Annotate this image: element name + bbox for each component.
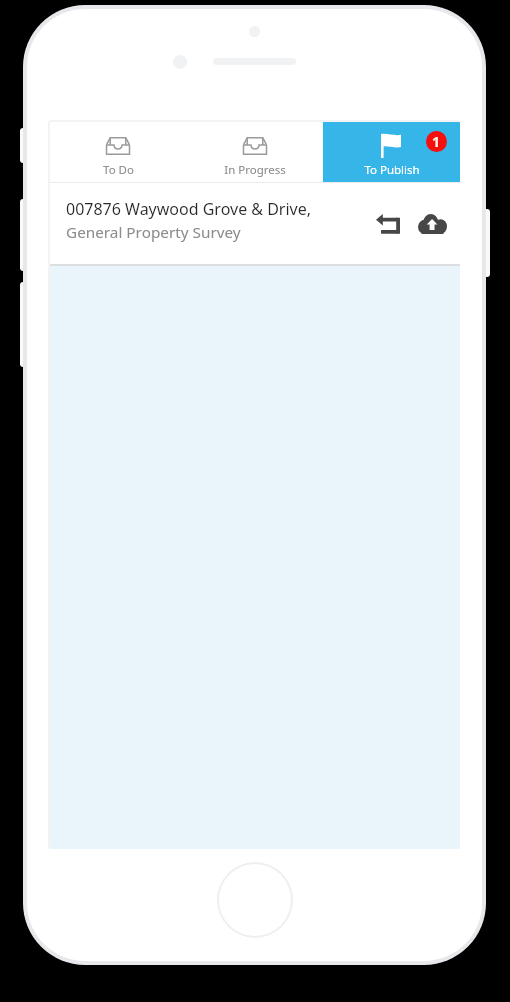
staticText: 1: [432, 132, 441, 151]
button[interactable]: In Progress: [186, 122, 323, 183]
button[interactable]: To Publish: [323, 122, 460, 183]
staticText: General Property Survey: [66, 222, 241, 243]
button[interactable]: 007876 Waywood Grove & Drive,: [50, 183, 460, 264]
button[interactable]: Return: [370, 206, 406, 242]
staticText: To Do: [103, 162, 134, 178]
staticText: To Publish: [364, 162, 420, 178]
button[interactable]: To Do: [50, 122, 186, 183]
button[interactable]: Upload: [414, 206, 450, 242]
staticText: 007876 Waywood Grove & Drive,: [66, 198, 312, 220]
staticText: In Progress: [224, 162, 286, 178]
